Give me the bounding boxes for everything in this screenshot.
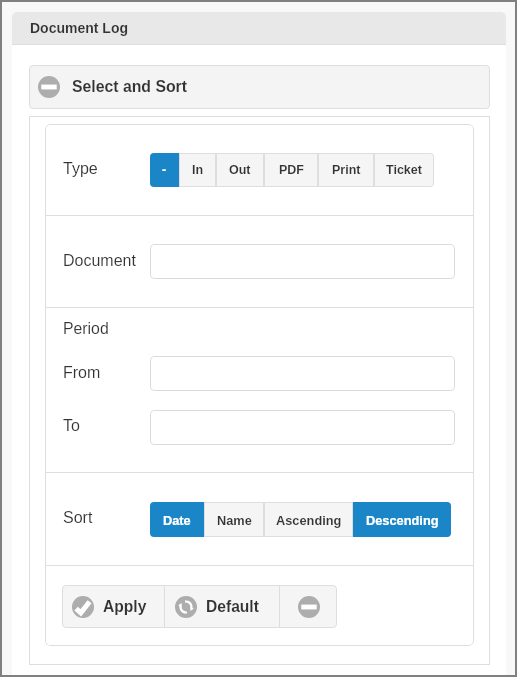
button[interactable]: Date: [150, 502, 204, 537]
staticText: Print: [332, 163, 361, 177]
staticText: Period: [63, 320, 109, 338]
button[interactable]: [150, 244, 455, 279]
staticText: Descending: [366, 513, 439, 527]
button[interactable]: Name: [204, 502, 264, 537]
staticText: Apply: [103, 598, 147, 615]
staticText: Type: [63, 160, 98, 178]
staticText: Name: [217, 513, 252, 527]
button[interactable]: PDF: [264, 153, 318, 187]
staticText: Default: [206, 598, 259, 615]
button[interactable]: -: [150, 153, 179, 187]
staticText: Document Log: [30, 20, 128, 36]
button[interactable]: [150, 356, 455, 391]
staticText: Ticket: [386, 163, 422, 177]
button[interactable]: Apply: [62, 585, 164, 628]
button[interactable]: Print: [318, 153, 374, 187]
staticText: Select and Sort: [72, 78, 187, 96]
staticText: PDF: [279, 163, 304, 177]
button[interactable]: In: [179, 153, 216, 187]
button[interactable]: Collapse: [280, 585, 337, 628]
staticText: Document: [63, 252, 136, 270]
button[interactable]: Out: [216, 153, 264, 187]
staticText: Date: [163, 513, 191, 527]
button[interactable]: Ticket: [374, 153, 434, 187]
staticText: Out: [229, 163, 251, 177]
staticText: Sort: [63, 509, 93, 527]
button[interactable]: Descending: [353, 502, 451, 537]
button[interactable]: Select and Sort: [29, 65, 490, 109]
staticText: -: [162, 163, 167, 177]
button[interactable]: Ascending: [264, 502, 353, 537]
staticText: Ascending: [276, 513, 342, 527]
button[interactable]: Default: [165, 585, 279, 628]
button[interactable]: [150, 410, 455, 445]
staticText: To: [63, 417, 80, 435]
staticText: From: [63, 364, 101, 382]
staticText: In: [192, 163, 204, 177]
